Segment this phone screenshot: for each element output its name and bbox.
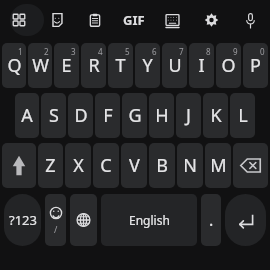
staticText: C bbox=[100, 153, 112, 178]
staticText: 1 bbox=[18, 46, 23, 57]
button[interactable]: Clipboard bbox=[82, 5, 108, 35]
staticText: L bbox=[238, 103, 248, 128]
staticText: D bbox=[74, 103, 88, 128]
staticText: E bbox=[61, 53, 72, 78]
staticText: 9 bbox=[233, 46, 238, 57]
staticText: O bbox=[221, 53, 236, 78]
button[interactable]: D bbox=[68, 93, 93, 138]
staticText: 2 bbox=[44, 46, 49, 57]
button[interactable]: G bbox=[122, 93, 147, 138]
staticText: A bbox=[21, 103, 33, 128]
button[interactable]: L bbox=[230, 93, 255, 138]
staticText: 5 bbox=[125, 46, 130, 57]
button[interactable]: E bbox=[54, 43, 79, 88]
staticText: N bbox=[183, 153, 197, 178]
button[interactable]: H bbox=[149, 93, 174, 138]
button[interactable]: T bbox=[108, 43, 133, 88]
staticText: S bbox=[49, 103, 59, 128]
staticText: X bbox=[73, 153, 84, 178]
button[interactable]: N bbox=[177, 143, 203, 188]
button[interactable]: Z bbox=[38, 143, 63, 188]
button[interactable]: R bbox=[81, 43, 106, 88]
staticText: H bbox=[155, 103, 169, 128]
staticText: 3 bbox=[71, 46, 76, 57]
button[interactable]: . bbox=[201, 194, 221, 246]
button[interactable]: I bbox=[189, 43, 214, 88]
staticText: J bbox=[186, 103, 191, 128]
button[interactable]: O bbox=[216, 43, 241, 88]
staticText: U bbox=[168, 53, 182, 78]
staticText: 7 bbox=[179, 46, 184, 57]
button[interactable]: Backspace bbox=[233, 143, 268, 188]
button[interactable]: A bbox=[15, 93, 39, 138]
button[interactable]: Apps bbox=[6, 5, 32, 35]
button[interactable]: Stickers bbox=[44, 5, 70, 35]
staticText: W bbox=[32, 53, 49, 78]
button[interactable]: ?123 bbox=[4, 194, 41, 246]
button[interactable]: Emoji bbox=[45, 194, 66, 246]
button[interactable]: S bbox=[41, 93, 66, 138]
staticText: ?123 bbox=[9, 211, 37, 229]
staticText: Q bbox=[7, 53, 22, 78]
staticText: I bbox=[198, 53, 205, 78]
button[interactable]: Settings bbox=[198, 5, 225, 35]
staticText: Y bbox=[142, 53, 153, 78]
staticText: K bbox=[210, 103, 222, 128]
staticText: 0 bbox=[260, 46, 265, 57]
button[interactable]: Voice input bbox=[237, 5, 264, 35]
button[interactable]: J bbox=[176, 93, 201, 138]
button[interactable]: C bbox=[93, 143, 119, 188]
button[interactable]: GIF bbox=[114, 5, 153, 35]
staticText: 4 bbox=[98, 46, 103, 57]
button[interactable]: Change language bbox=[70, 194, 97, 246]
staticText: English bbox=[129, 212, 170, 228]
button[interactable]: P bbox=[243, 43, 268, 88]
button[interactable]: W bbox=[28, 43, 52, 88]
button[interactable]: V bbox=[121, 143, 147, 188]
staticText: P bbox=[250, 53, 261, 78]
staticText: 6 bbox=[152, 46, 157, 57]
button[interactable]: X bbox=[65, 143, 91, 188]
staticText: M bbox=[210, 153, 227, 178]
staticText: Z bbox=[45, 153, 56, 178]
staticText: G bbox=[128, 103, 142, 128]
staticText: R bbox=[88, 53, 100, 78]
button[interactable]: M bbox=[205, 143, 231, 188]
button[interactable]: F bbox=[95, 93, 120, 138]
button[interactable]: English bbox=[101, 194, 197, 246]
staticText: . bbox=[209, 209, 214, 231]
button[interactable]: Shift bbox=[2, 143, 36, 188]
button[interactable]: K bbox=[203, 93, 228, 138]
button[interactable]: Q bbox=[2, 43, 26, 88]
staticText: / bbox=[54, 223, 58, 235]
staticText: 8 bbox=[206, 46, 211, 57]
staticText: F bbox=[103, 103, 113, 128]
button[interactable]: Keyboard layout bbox=[159, 5, 186, 35]
staticText: T bbox=[115, 53, 126, 78]
button[interactable]: Y bbox=[135, 43, 160, 88]
button[interactable]: B bbox=[149, 143, 175, 188]
staticText: V bbox=[129, 153, 140, 178]
button[interactable]: Enter bbox=[225, 194, 266, 246]
button[interactable]: U bbox=[162, 43, 187, 88]
staticText: B bbox=[156, 153, 168, 178]
staticText: GIF bbox=[123, 11, 145, 29]
